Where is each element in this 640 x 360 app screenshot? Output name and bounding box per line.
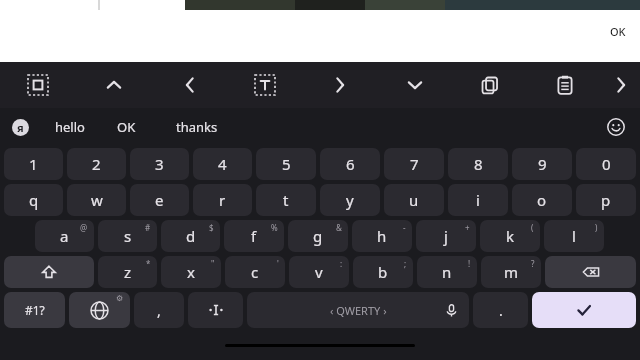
button[interactable]: l [544,220,604,252]
button[interactable]: Cursor control [188,292,243,328]
staticText: ⚙ [116,294,124,303]
staticText: OK [610,24,626,39]
button[interactable]: s [98,220,157,252]
button[interactable]: f [224,220,284,252]
staticText: v [315,262,323,282]
staticText: 9 [538,154,547,174]
button[interactable]: Shift [4,256,94,288]
staticText: u [409,190,419,210]
button[interactable]: 9 [512,148,572,180]
staticText: 2 [92,154,101,174]
staticText: i [476,190,480,210]
staticText: 3 [155,154,164,174]
staticText: hello [55,118,85,136]
button[interactable]: OK [100,108,152,146]
button[interactable]: Move right [302,62,377,108]
button[interactable]: n [417,256,477,288]
button[interactable]: Move left [152,62,227,108]
button[interactable]: Backspace [545,256,636,288]
staticText: $ [209,222,214,233]
button[interactable]: thanks [152,108,242,146]
staticText: r [219,190,226,210]
staticText: 5 [282,154,291,174]
button[interactable]: 0 [576,148,636,180]
staticText: ( [531,222,534,233]
button[interactable]: Emoji [592,108,640,146]
staticText: b [378,262,388,282]
button[interactable]: More [602,62,640,108]
button[interactable]: . [473,292,528,328]
button[interactable]: Move down [377,62,452,108]
button[interactable]: x [161,256,221,288]
button[interactable]: 3 [130,148,189,180]
button[interactable]: q [4,184,63,216]
staticText: ) [595,222,598,233]
staticText: ? [531,258,535,269]
button[interactable]: a [35,220,94,252]
staticText: m [504,262,519,282]
staticText: g [313,226,323,246]
staticText: x [187,262,195,282]
button[interactable]: hello [40,108,100,146]
button[interactable]: Change language [69,292,130,328]
button[interactable]: h [352,220,412,252]
button[interactable]: r [193,184,252,216]
button[interactable]: e [130,184,189,216]
button[interactable]: Enter [532,292,636,328]
button[interactable]: i [448,184,508,216]
button[interactable]: j [416,220,476,252]
button[interactable]: v [289,256,349,288]
staticText: f [251,226,257,246]
staticText: @ [80,222,88,233]
button[interactable]: Copy [452,62,527,108]
button[interactable]: Voice input settings [0,108,40,146]
button[interactable]: 4 [193,148,252,180]
staticText: #1? [25,302,45,318]
button[interactable]: k [480,220,540,252]
button[interactable]: z [98,256,157,288]
staticText: e [155,190,164,210]
button[interactable]: , [134,292,184,328]
staticText: t [283,190,289,210]
staticText: y [346,190,354,210]
button[interactable]: w [67,184,126,216]
button[interactable]: 2 [67,148,126,180]
staticText: ' [277,258,279,269]
staticText: q [29,190,39,210]
button[interactable]: 7 [384,148,444,180]
button[interactable]: Select all [0,62,76,108]
staticText: # [145,222,151,233]
staticText: l [572,226,576,246]
staticText: * [146,258,151,269]
button[interactable]: p [576,184,636,216]
button[interactable]: o [512,184,572,216]
button[interactable]: Clipboard [527,62,602,108]
button[interactable]: 5 [256,148,316,180]
button[interactable]: 8 [448,148,508,180]
button[interactable]: 6 [320,148,380,180]
button[interactable]: c [225,256,285,288]
button[interactable]: #1? [4,292,65,328]
button[interactable]: y [320,184,380,216]
button[interactable]: g [288,220,348,252]
staticText: d [186,226,196,246]
staticText: . [499,301,503,320]
button[interactable]: b [353,256,413,288]
staticText: OK [117,118,136,136]
button[interactable]: ‹ QWERTY › [247,292,469,328]
button[interactable]: Select text [227,62,302,108]
staticText: ‹ QWERTY › [330,303,387,318]
staticText: ! [468,258,471,269]
staticText: % [271,222,278,233]
button[interactable]: t [256,184,316,216]
button[interactable]: 1 [4,148,63,180]
button[interactable]: m [481,256,541,288]
button[interactable]: u [384,184,444,216]
button[interactable]: Move up [76,62,152,108]
staticText: z [124,262,132,282]
staticText: h [377,226,387,246]
button[interactable]: d [161,220,220,252]
staticText: я [17,120,24,135]
staticText: , [157,301,161,320]
button[interactable]: OK [604,20,632,43]
